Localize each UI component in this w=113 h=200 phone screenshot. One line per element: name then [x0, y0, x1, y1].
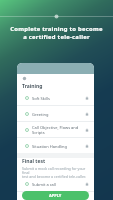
button[interactable]: Soft Skills: [17, 90, 94, 106]
button[interactable]: APPLY: [22, 191, 89, 200]
staticText: Submit a call: [32, 182, 85, 187]
button[interactable]: Back: [21, 75, 28, 82]
staticText: Call Objective, Flows and Scripts: [32, 125, 85, 135]
button[interactable]: Call Objective, Flows and Scripts: [17, 122, 94, 138]
button[interactable]: Greeting: [17, 106, 94, 122]
staticText: Submit a mock call recording for your fi…: [22, 166, 90, 180]
staticText: Greeting: [32, 112, 85, 117]
staticText: Situation Handling: [32, 144, 85, 149]
staticText: Soft Skills: [32, 96, 85, 101]
staticText: APPLY: [49, 193, 62, 198]
button[interactable]: Submit a call: [17, 176, 94, 192]
button[interactable]: Situation Handling: [17, 138, 94, 154]
staticText: Training: [22, 83, 43, 90]
staticText: Complete training to become a certified …: [0, 25, 113, 41]
staticText: Final test: [22, 158, 46, 165]
